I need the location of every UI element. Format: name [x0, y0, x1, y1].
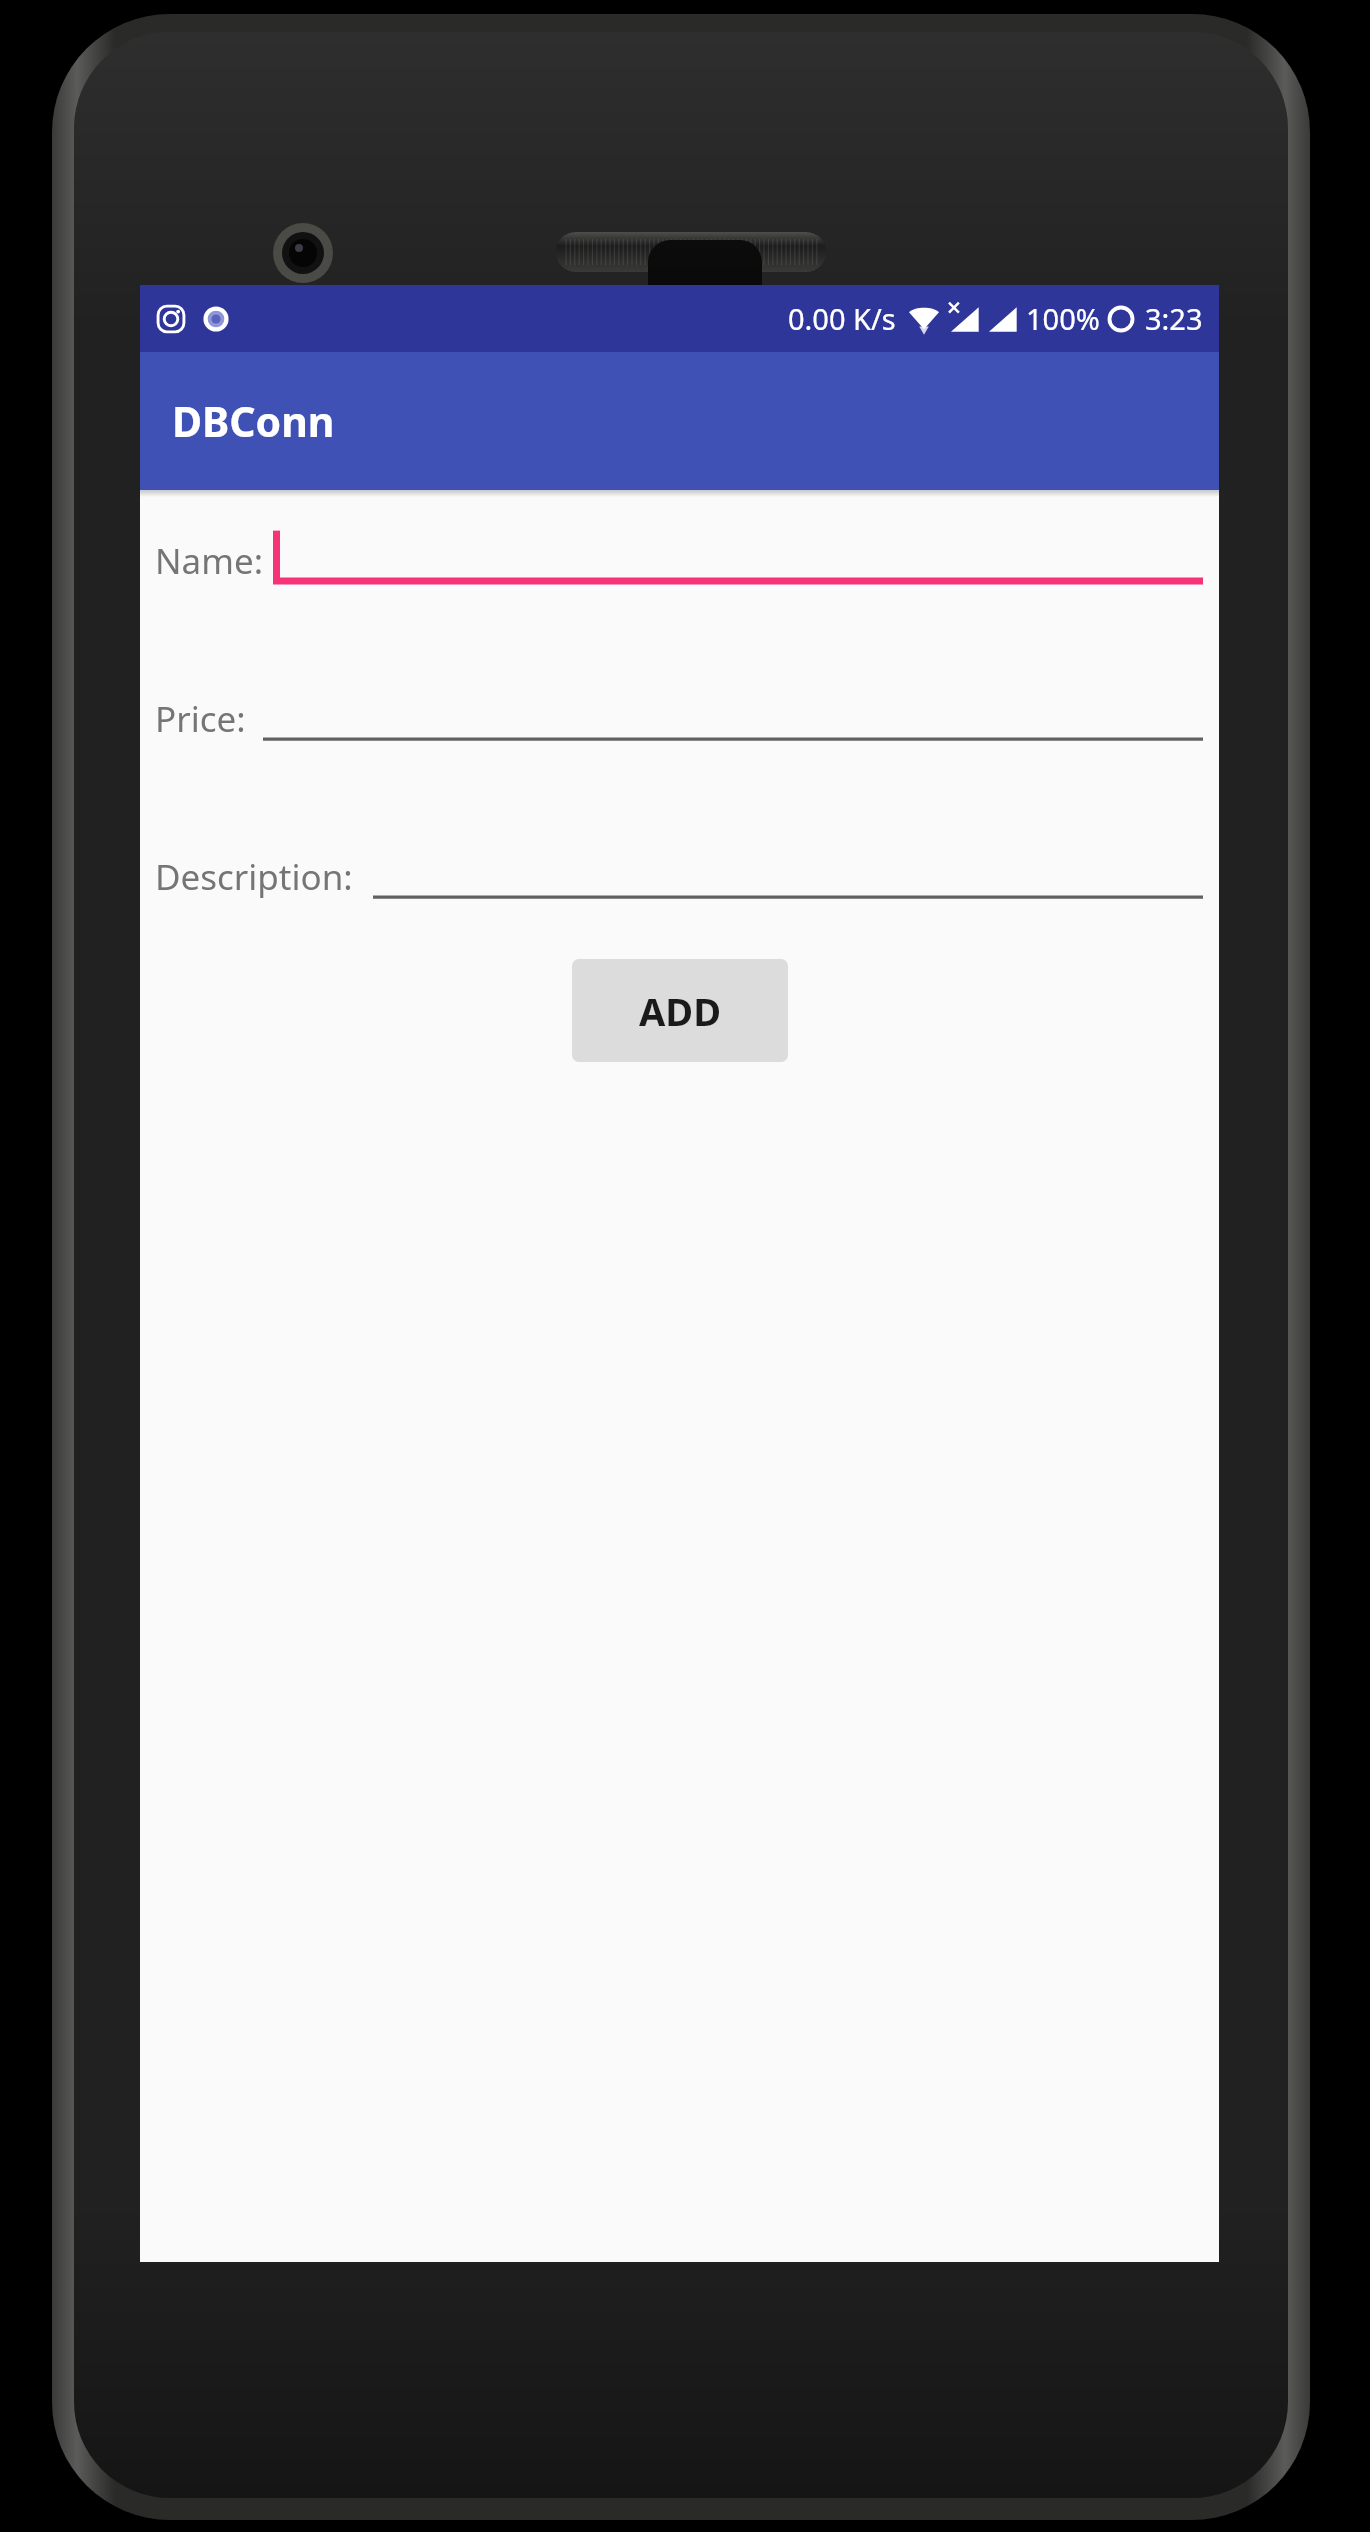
- staticText: 0.00 K/s: [788, 299, 896, 338]
- staticText: Name:: [155, 537, 264, 585]
- button[interactable]: ADD: [572, 959, 788, 1062]
- staticText: 100%: [1026, 299, 1100, 338]
- staticText: DBConn: [172, 393, 335, 449]
- staticText: Description:: [155, 853, 353, 901]
- button[interactable]: Price:: [155, 667, 1203, 770]
- button[interactable]: Description:: [155, 825, 1203, 928]
- button[interactable]: Name:: [155, 509, 1203, 612]
- staticText: 3:23: [1145, 299, 1203, 338]
- staticText: Price:: [155, 695, 246, 743]
- staticText: ADD: [639, 985, 721, 1037]
